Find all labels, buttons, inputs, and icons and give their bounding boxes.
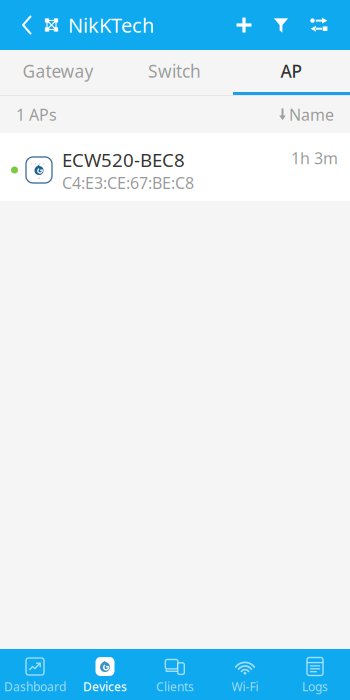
staticText: 1 APs [16,104,57,125]
staticText: AP [280,59,302,82]
button[interactable]: Clients [140,649,210,700]
button[interactable]: ECW520-BEC8 [0,133,350,201]
staticText: Gateway [22,59,93,82]
button[interactable]: Add [226,0,262,50]
staticText: Switch [148,59,201,82]
button[interactable]: Logs [280,649,350,700]
button[interactable]: Sort [300,0,338,50]
staticText: Logs [302,678,328,694]
button[interactable]: Filter [262,0,300,50]
staticText: Clients [156,678,194,694]
staticText: Wi-Fi [231,678,258,694]
staticText: 1h 3m [291,147,338,169]
button[interactable]: Back [14,0,40,50]
staticText: Dashboard [4,678,66,694]
button[interactable]: Wi-Fi [210,649,280,700]
button[interactable]: Devices [70,649,140,700]
button[interactable]: Dashboard [0,649,70,700]
button[interactable]: AP [233,50,350,95]
staticText: NikKTech [68,12,154,38]
staticText: C4:E3:CE:67:BE:C8 [62,172,194,193]
button[interactable]: Name [279,104,334,125]
staticText: ECW520-BEC8 [62,147,185,172]
staticText: Name [289,104,334,125]
button[interactable]: Switch [116,50,233,95]
staticText: Devices [83,678,127,694]
button[interactable]: Gateway [0,50,116,95]
